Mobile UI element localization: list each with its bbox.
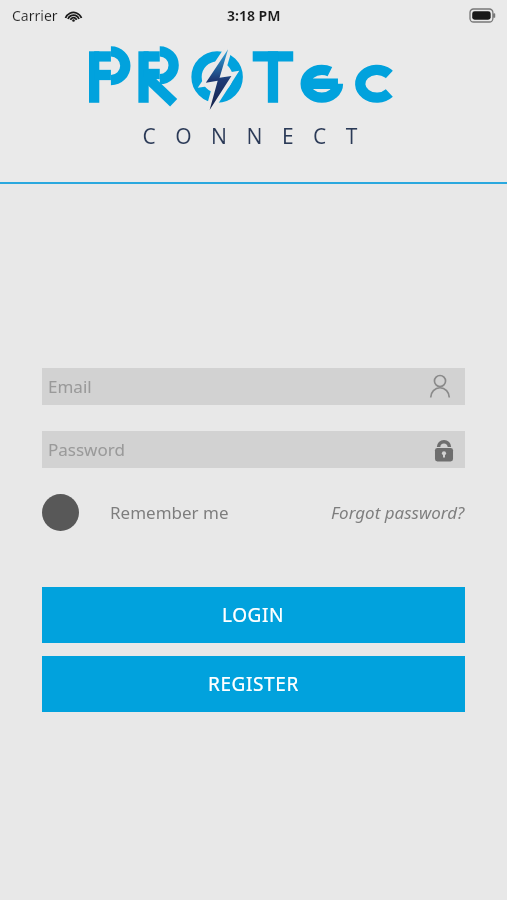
staticText: 3:18 PM — [227, 6, 281, 25]
staticText: Email — [48, 375, 92, 398]
staticText: C O N N E C T — [0, 122, 507, 151]
button[interactable]: Password — [42, 431, 465, 468]
other: Password — [433, 437, 455, 463]
staticText: Carrier — [12, 6, 58, 25]
staticText: Password — [48, 438, 125, 461]
staticText: Remember me — [110, 501, 229, 524]
other: Email — [425, 372, 455, 402]
button[interactable]: LOGIN — [42, 587, 465, 643]
staticText: LOGIN — [222, 602, 285, 628]
button[interactable]: Forgot password? — [331, 501, 465, 524]
button[interactable]: Remember me toggle — [42, 494, 79, 531]
button[interactable]: REGISTER — [42, 656, 465, 712]
button[interactable]: Remember me — [110, 501, 229, 524]
staticText: Forgot password? — [331, 501, 465, 524]
staticText: REGISTER — [208, 671, 299, 697]
button[interactable]: Email — [42, 368, 465, 405]
